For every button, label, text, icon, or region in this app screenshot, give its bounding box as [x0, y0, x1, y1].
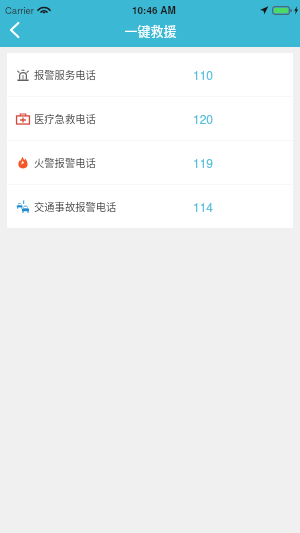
button[interactable]: 医疗急救电话: [7, 97, 293, 141]
staticText: Carrier: [5, 3, 35, 17]
staticText: 报警服务电话: [34, 67, 96, 82]
staticText: 医疗急救电话: [34, 111, 96, 126]
staticText: 110: [193, 66, 214, 83]
button[interactable]: 火警报警电话: [7, 141, 293, 185]
staticText: 119: [193, 154, 214, 171]
button[interactable]: Back: [0, 20, 28, 40]
staticText: 114: [193, 198, 214, 215]
staticText: 120: [193, 110, 214, 127]
staticText: 交通事故报警电话: [34, 199, 117, 214]
staticText: 一键救援: [124, 21, 177, 40]
staticText: 火警报警电话: [34, 155, 96, 170]
button[interactable]: 交通事故报警电话: [7, 185, 293, 228]
button[interactable]: 报警服务电话: [7, 53, 293, 97]
staticText: 10:46 AM: [132, 3, 176, 17]
